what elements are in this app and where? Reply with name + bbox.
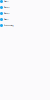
staticText: Battery [3,13,9,14]
staticText: Device naming [3,25,13,26]
staticText: Battery [3,1,8,2]
staticText: Battery [3,19,8,20]
staticText: Battery [3,6,9,8]
